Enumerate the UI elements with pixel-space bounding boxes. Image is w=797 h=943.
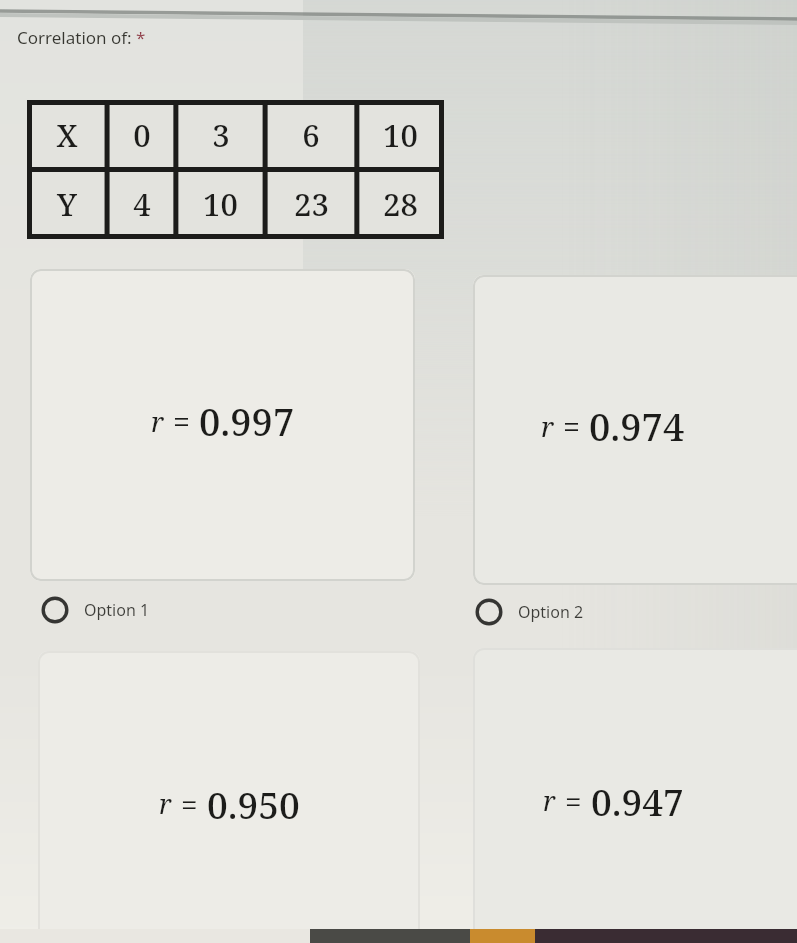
button[interactable]: Option 2 (474, 594, 584, 630)
staticText: 6 (302, 114, 320, 156)
staticText: r (159, 786, 172, 822)
staticText: Option 1 (84, 599, 150, 621)
staticText: 10 (203, 183, 238, 225)
staticText: 4 (133, 183, 151, 225)
staticText: = (563, 406, 580, 447)
button[interactable]: r (473, 275, 797, 585)
staticText: Option 2 (518, 601, 584, 623)
button[interactable]: Option 1 (40, 592, 150, 628)
button[interactable]: r (473, 648, 797, 943)
button[interactable]: r (38, 651, 420, 943)
staticText: 23 (294, 183, 329, 225)
staticText: 0 (133, 114, 151, 156)
staticText: Correlation of: * (17, 26, 146, 49)
staticText: r (151, 403, 164, 440)
staticText: 3 (212, 114, 230, 156)
staticText: = (181, 784, 198, 824)
staticText: = (565, 781, 582, 821)
staticText: = (173, 401, 190, 442)
staticText: 10 (383, 114, 418, 156)
staticText: 0.950 (207, 779, 300, 829)
button[interactable]: r (30, 269, 415, 581)
staticText: 0.974 (589, 400, 685, 452)
button[interactable]: X (27, 100, 444, 239)
staticText: 28 (383, 183, 418, 225)
staticText: Y (57, 183, 77, 225)
staticText: 0.947 (591, 776, 684, 826)
button[interactable]: Correlation of: * (17, 26, 146, 49)
staticText: r (541, 408, 554, 445)
staticText: 0.997 (199, 395, 295, 447)
staticText: X (56, 114, 78, 156)
staticText: r (543, 783, 556, 819)
